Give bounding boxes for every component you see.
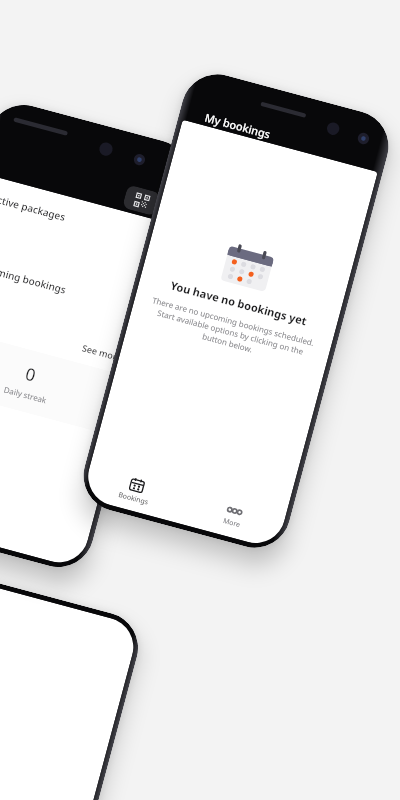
- button[interactable]: Bookings: [81, 459, 189, 523]
- button[interactable]: See more: [0, 308, 124, 364]
- staticText: Bookings: [117, 490, 150, 508]
- staticText: See more: [81, 341, 124, 363]
- staticText: There are no upcoming bookings scheduled…: [144, 294, 317, 370]
- staticText: You have no bookings yet: [169, 277, 309, 328]
- staticText: Daily streak: [3, 383, 48, 405]
- staticText: Upcoming bookings: [0, 258, 68, 297]
- staticText: My bookings: [203, 110, 273, 142]
- staticText: 0: [23, 362, 39, 387]
- button[interactable]: Scan QR code: [122, 184, 161, 216]
- button[interactable]: More: [179, 485, 287, 550]
- staticText: Active packages: [0, 191, 67, 224]
- staticText: More: [222, 516, 242, 530]
